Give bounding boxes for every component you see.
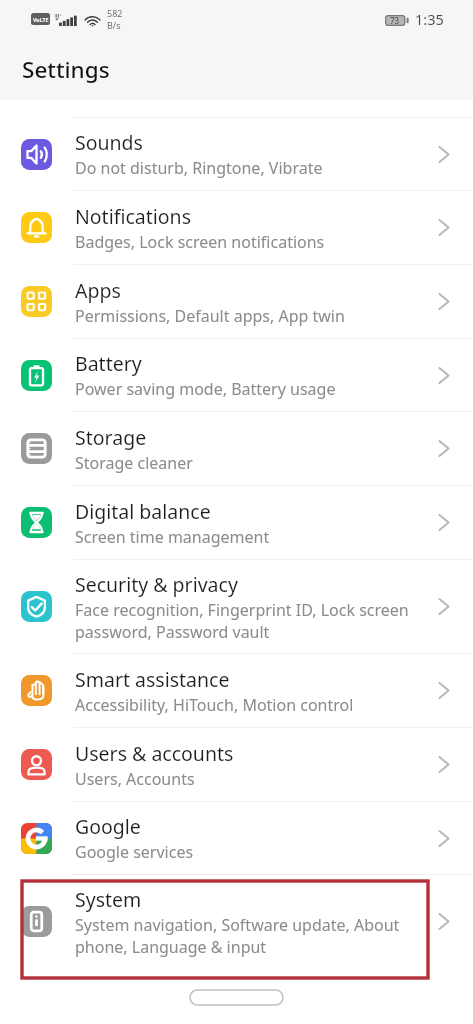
staticText: phone, Language & input [75, 936, 267, 958]
staticText: Notifications [75, 203, 191, 230]
staticText: System [75, 886, 142, 913]
staticText: password, Password vault [75, 621, 270, 643]
button[interactable]: Notifications [0, 191, 473, 265]
button[interactable]: Smart assistance [0, 654, 473, 728]
staticText: Settings [22, 54, 110, 85]
staticText: Digital balance [75, 498, 211, 525]
button[interactable]: Users & accounts [0, 728, 473, 802]
button[interactable]: Battery [0, 339, 473, 412]
staticText: Apps [75, 277, 121, 304]
staticText: System navigation, Software update, Abou… [75, 914, 400, 936]
staticText: Storage [75, 424, 147, 451]
staticText: 1:35 [415, 9, 444, 29]
staticText: Accessibility, HiTouch, Motion control [75, 694, 354, 716]
staticText: Face recognition, Fingerprint ID, Lock s… [75, 599, 409, 621]
staticText: 582 [107, 7, 123, 19]
button[interactable]: Apps [0, 265, 473, 339]
staticText: Badges, Lock screen notifications [75, 231, 325, 253]
staticText: Google [75, 813, 141, 840]
staticText: Users & accounts [75, 740, 234, 767]
staticText: Power saving mode, Battery usage [75, 378, 336, 400]
staticText: Sounds [75, 129, 143, 156]
button[interactable]: Digital balance [0, 486, 473, 560]
staticText: B/s [107, 19, 121, 31]
staticText: Screen time management [75, 526, 270, 548]
button[interactable]: Security & privacy [0, 560, 473, 654]
button[interactable]: System [0, 875, 473, 968]
button[interactable]: Storage [0, 412, 473, 486]
staticText: 73 [390, 15, 400, 26]
button[interactable]: Sounds [0, 118, 473, 191]
staticText: Google services [75, 841, 194, 863]
staticText: VoLTE [33, 16, 49, 23]
staticText: Storage cleaner [75, 452, 193, 474]
button[interactable]: Google [0, 802, 473, 875]
staticText: Users, Accounts [75, 768, 195, 790]
staticText: Permissions, Default apps, App twin [75, 305, 345, 327]
staticText: Do not disturb, Ringtone, Vibrate [75, 157, 323, 179]
staticText: Smart assistance [75, 666, 230, 693]
staticText: Security & privacy [75, 571, 238, 598]
staticText: Battery [75, 350, 142, 377]
